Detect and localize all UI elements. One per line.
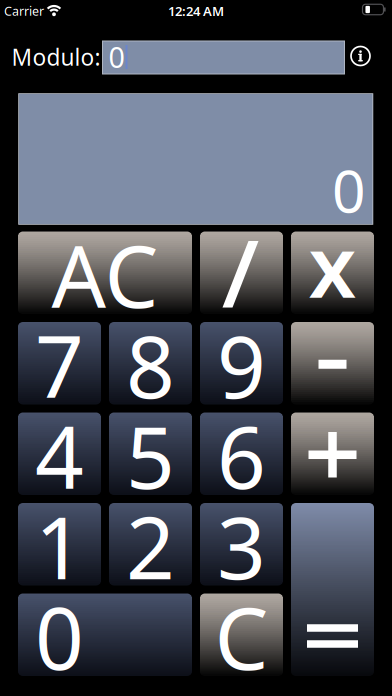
button[interactable]: x	[291, 231, 374, 314]
staticText: 7	[35, 307, 84, 423]
button[interactable]: 0	[18, 593, 192, 676]
staticText: 3	[217, 488, 266, 604]
button[interactable]: 5	[109, 412, 192, 495]
button[interactable]: Add	[291, 412, 374, 495]
staticText: C	[214, 579, 268, 695]
staticText: 8	[126, 307, 175, 423]
staticText: 0	[35, 579, 84, 695]
staticText: Carrier	[4, 2, 44, 20]
staticText: 1	[35, 488, 84, 604]
button[interactable]: 8	[109, 322, 192, 404]
staticText: x	[308, 207, 356, 323]
button[interactable]: 4	[18, 412, 101, 495]
button[interactable]: 1	[18, 503, 101, 585]
staticText: 0	[108, 37, 124, 76]
button[interactable]: Subtract	[291, 322, 374, 404]
button[interactable]: Equals	[291, 503, 374, 676]
button[interactable]: 3	[200, 503, 283, 585]
staticText: 4	[35, 398, 84, 514]
staticText: 5	[126, 398, 175, 514]
button[interactable]: 7	[18, 322, 101, 404]
button[interactable]: 6	[200, 412, 283, 495]
button[interactable]: Info	[347, 43, 373, 69]
button[interactable]: 9	[200, 322, 283, 404]
staticText: Modulo:	[11, 42, 100, 72]
button[interactable]: C	[200, 593, 283, 676]
staticText: 6	[217, 398, 266, 514]
button[interactable]: 2	[109, 503, 192, 585]
staticText: 0	[332, 150, 366, 230]
button[interactable]: 0	[102, 40, 345, 74]
staticText: 12:24 AM	[168, 2, 224, 20]
staticText: 2	[126, 488, 175, 604]
button[interactable]: Divide	[200, 231, 283, 314]
staticText: 9	[217, 307, 266, 423]
button[interactable]: AC	[18, 231, 192, 314]
staticText: AC	[51, 217, 158, 333]
